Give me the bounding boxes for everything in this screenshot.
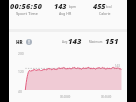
staticText: HR xyxy=(16,39,23,45)
staticText: 40 xyxy=(18,89,22,93)
staticText: 120 xyxy=(18,69,24,73)
staticText: kcal xyxy=(106,5,112,9)
staticText: 200 xyxy=(18,51,24,55)
staticText: 00:28:00 xyxy=(60,95,71,99)
staticText: 455 xyxy=(93,1,106,11)
staticText: 00:56:50 xyxy=(10,1,43,11)
staticText: Avg xyxy=(62,40,68,44)
staticText: 143 xyxy=(68,36,82,46)
staticText: 00:56:00 xyxy=(101,95,112,99)
button[interactable] xyxy=(46,0,84,20)
staticText: Maximum xyxy=(89,40,103,44)
button[interactable] xyxy=(14,36,34,46)
staticText: 143 xyxy=(54,1,67,11)
staticText: Avg HR xyxy=(59,11,72,16)
staticText: 143 xyxy=(115,64,120,68)
staticText: bpm xyxy=(69,5,76,9)
staticText: 151 xyxy=(105,36,119,46)
staticText: Sport Time xyxy=(16,10,38,16)
button[interactable] xyxy=(8,0,46,20)
other: About heart rate xyxy=(26,39,32,45)
staticText: Calorie xyxy=(99,11,111,16)
button[interactable] xyxy=(84,0,122,20)
